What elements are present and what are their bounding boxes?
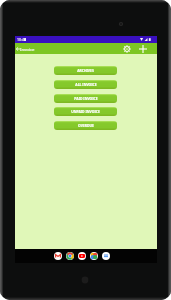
button[interactable]: Messages (102, 252, 110, 260)
button[interactable]: YouTube (78, 252, 86, 260)
staticText: ALL INVOICE (75, 82, 97, 87)
button[interactable]: ARCHIVES (54, 66, 117, 75)
button[interactable]: Chrome (66, 252, 74, 260)
staticText: Invoice (20, 46, 35, 52)
staticText: OVERDUE (78, 123, 94, 128)
button[interactable]: Settings (121, 43, 132, 54)
button[interactable]: Add (137, 43, 148, 54)
button[interactable]: Photos (90, 252, 98, 260)
staticText: 10:44 (17, 37, 26, 42)
button[interactable]: ALL INVOICE (54, 80, 117, 89)
button[interactable]: Back (15, 43, 21, 54)
button[interactable]: OVERDUE (54, 121, 117, 130)
staticText: UNPAID INVOICE (71, 109, 100, 114)
button[interactable]: Gmail (54, 252, 62, 260)
button[interactable]: UNPAID INVOICE (54, 107, 117, 116)
button[interactable]: PAID INVOICE (54, 94, 117, 103)
staticText: ARCHIVES (77, 68, 94, 73)
staticText: PAID INVOICE (74, 96, 98, 101)
